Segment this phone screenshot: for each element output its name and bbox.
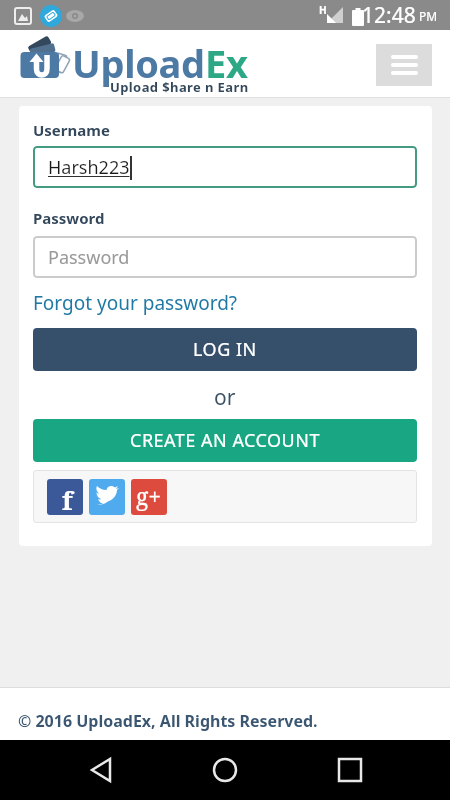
staticText: PM xyxy=(419,8,438,24)
staticText: Password xyxy=(48,245,130,270)
staticText: Harsh223 xyxy=(48,155,130,180)
staticText: CREATE AN ACCOUNT xyxy=(130,428,320,453)
button[interactable]: f xyxy=(47,479,83,515)
staticText: g+ xyxy=(136,480,162,511)
button[interactable] xyxy=(300,740,450,800)
button[interactable]: LOG IN xyxy=(33,328,417,371)
button[interactable]: Harsh223 xyxy=(33,146,417,188)
staticText: Ex xyxy=(205,37,248,89)
staticText: 12:48 xyxy=(362,1,416,30)
staticText: Username xyxy=(33,120,110,140)
staticText: Upload xyxy=(72,37,205,89)
staticText: © 2016 UploadEx, All Rights Reserved. xyxy=(18,710,318,732)
button[interactable]: Password xyxy=(33,236,417,278)
staticText: H xyxy=(319,3,327,17)
button[interactable] xyxy=(376,44,432,86)
button[interactable] xyxy=(0,740,150,800)
staticText: LOG IN xyxy=(193,337,257,362)
button[interactable]: CREATE AN ACCOUNT xyxy=(33,419,417,462)
staticText: or xyxy=(214,383,236,412)
button[interactable] xyxy=(89,479,125,515)
button[interactable]: Forgot your password? xyxy=(33,290,238,316)
staticText: f xyxy=(62,482,73,515)
button[interactable]: g+ xyxy=(131,479,167,515)
staticText: Password xyxy=(33,208,105,228)
staticText: Upload $hare n Earn xyxy=(110,78,249,96)
button[interactable] xyxy=(150,740,300,800)
